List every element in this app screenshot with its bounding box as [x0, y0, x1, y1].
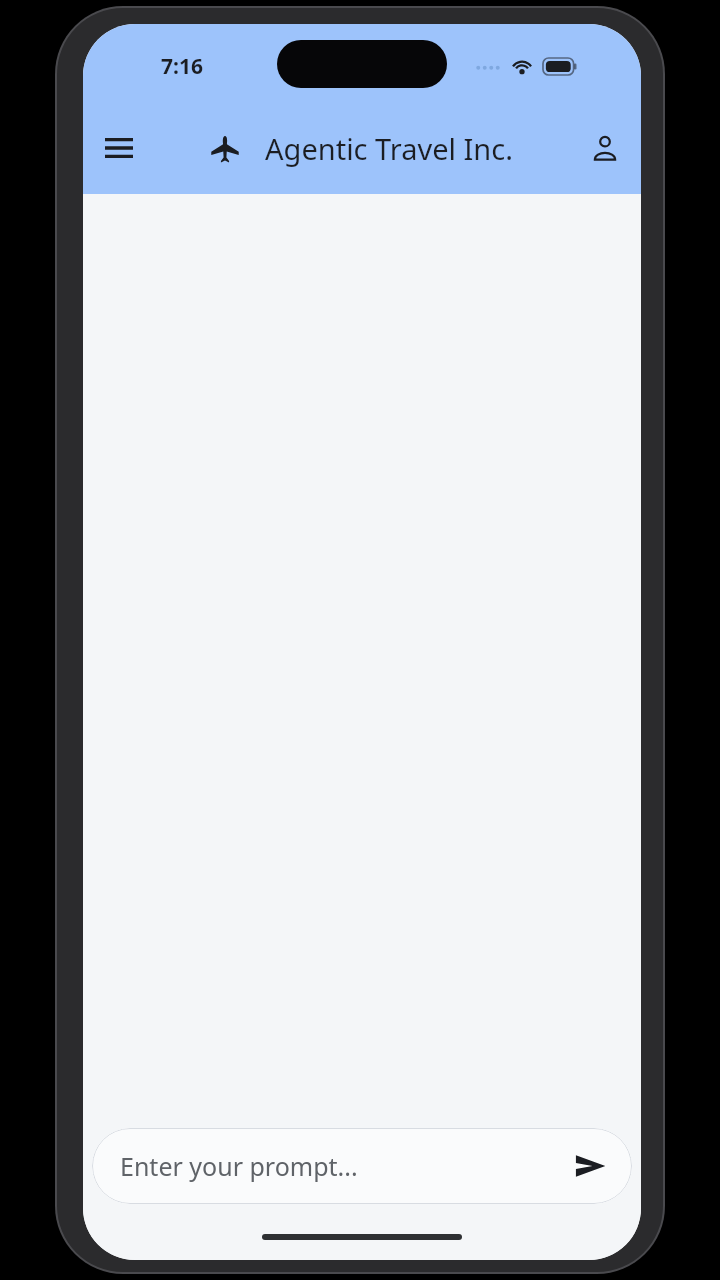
staticText: Enter your prompt... [120, 1149, 566, 1183]
button[interactable]: Open navigation menu [91, 120, 147, 176]
staticText: 7:16 [161, 52, 203, 81]
button[interactable]: Account [579, 122, 631, 174]
button[interactable]: Send [566, 1142, 614, 1190]
button[interactable]: Enter your prompt... [92, 1128, 632, 1204]
staticText: Agentic Travel Inc. [265, 129, 513, 168]
